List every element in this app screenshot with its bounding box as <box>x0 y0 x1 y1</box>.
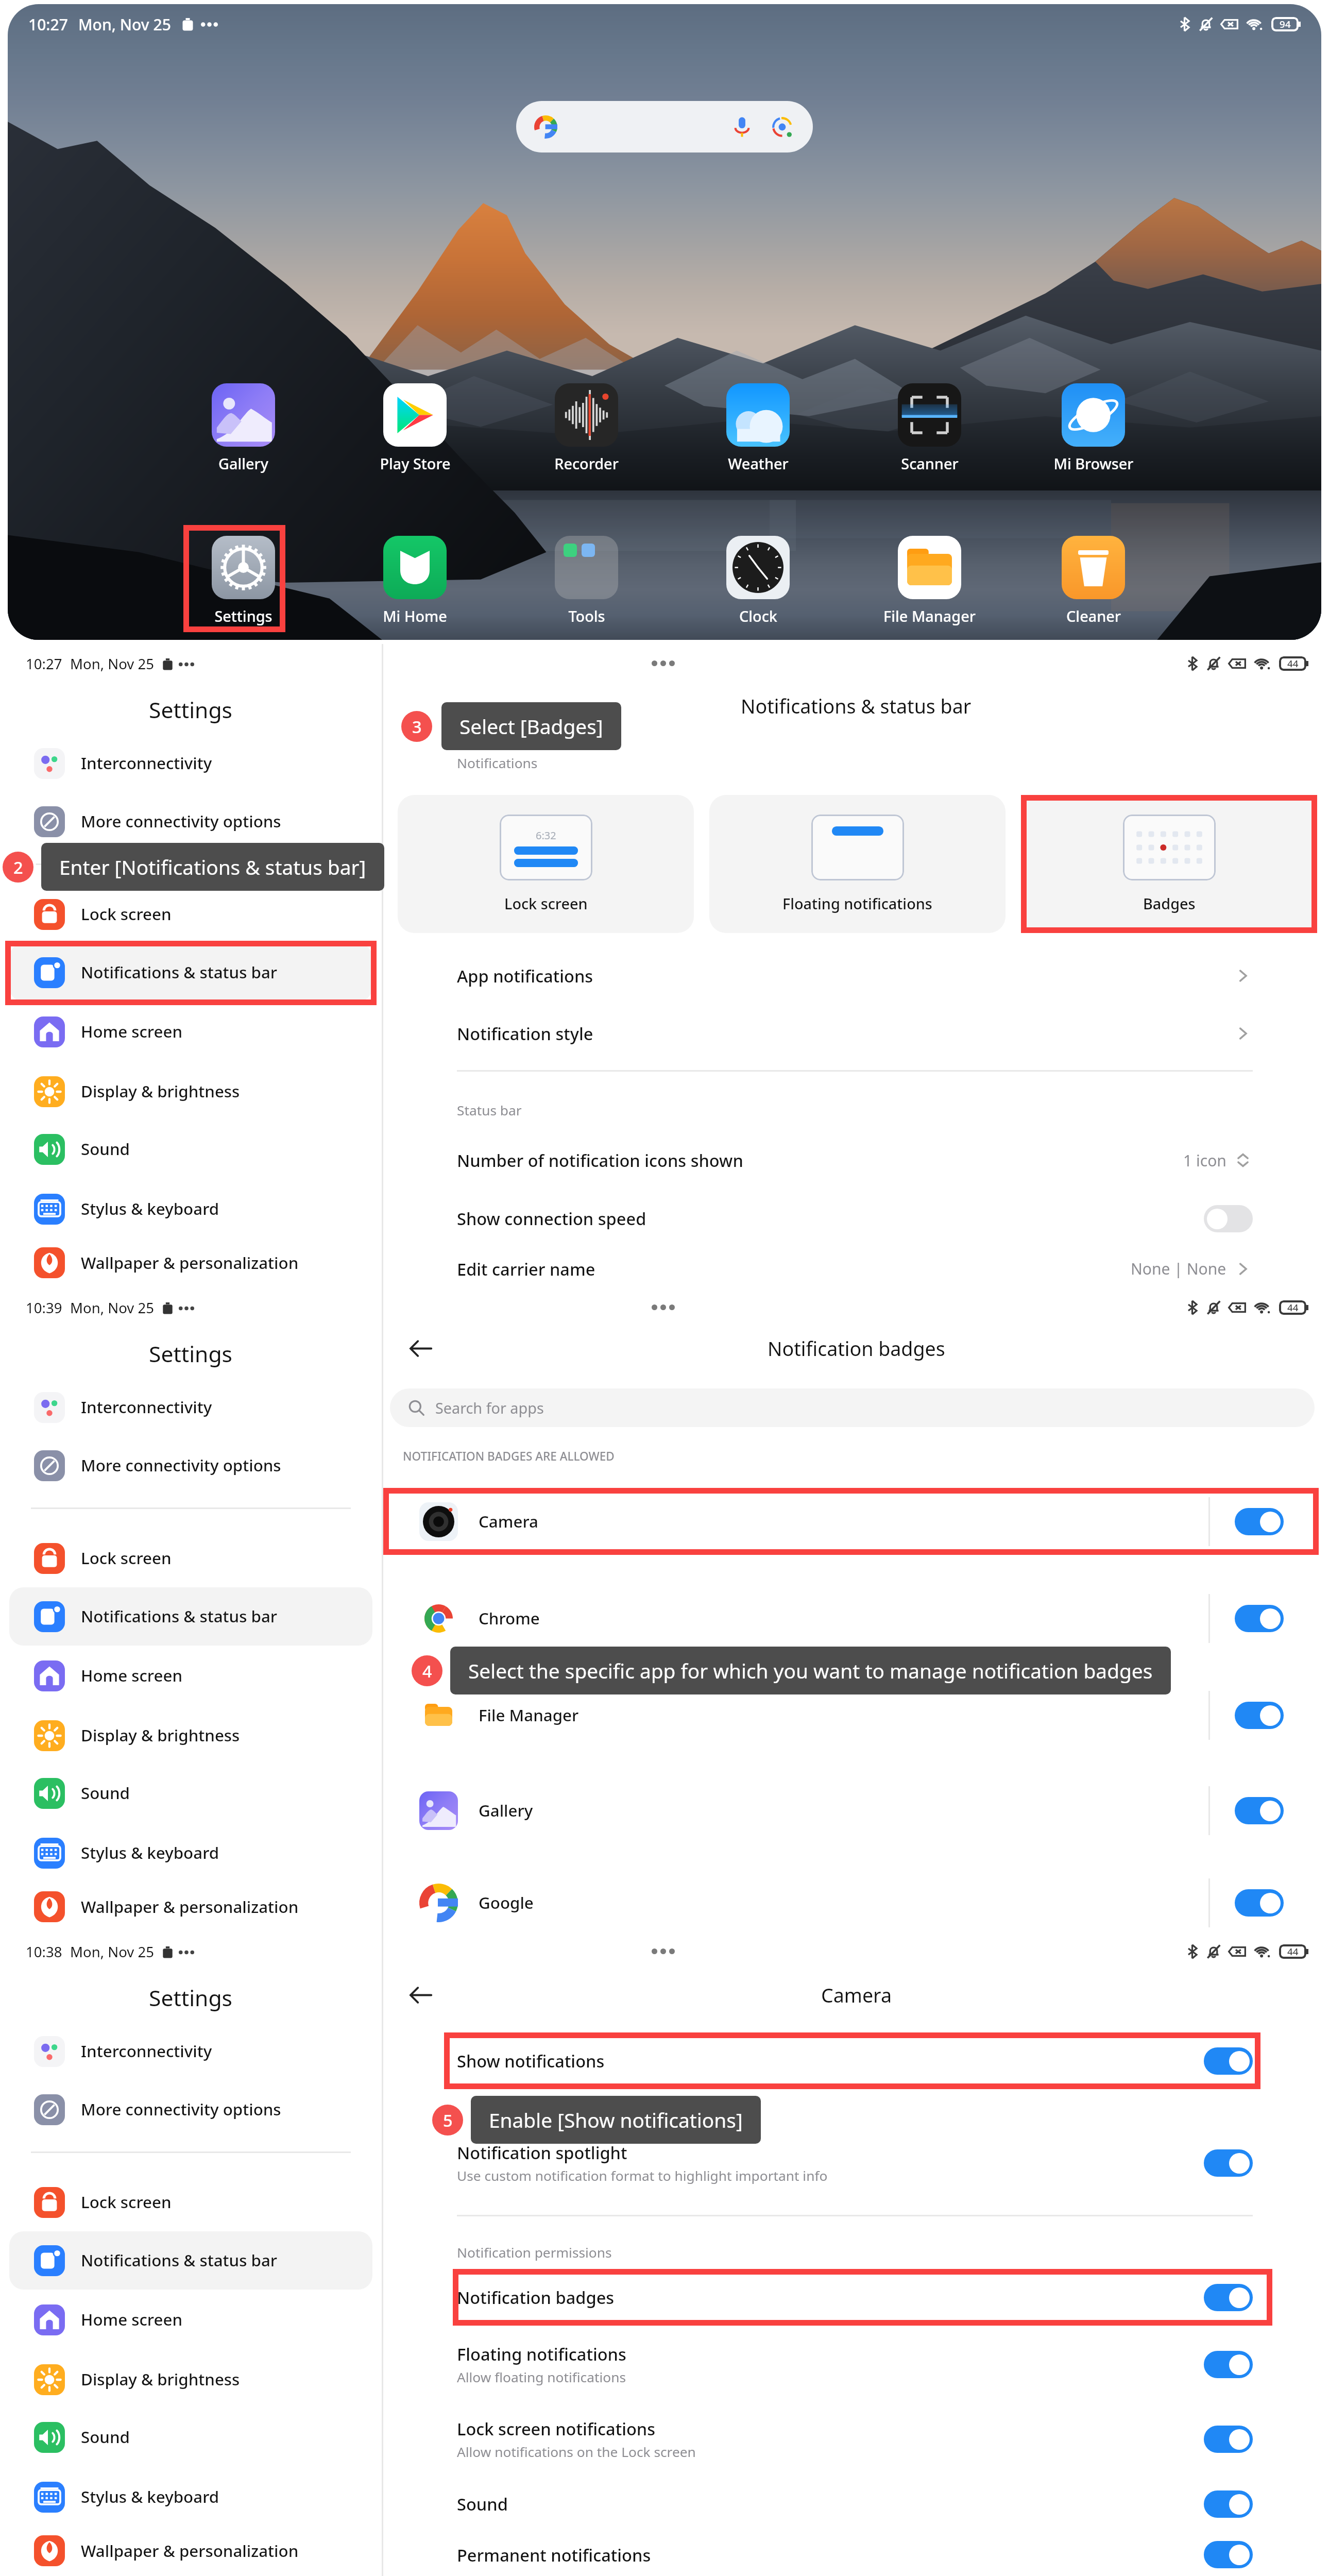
button[interactable]: Floating notifications <box>709 795 1006 933</box>
button[interactable]: Sound <box>9 2408 372 2466</box>
button[interactable]: Lock screen <box>9 1529 372 1587</box>
button[interactable] <box>516 101 813 152</box>
button[interactable]: Camera <box>383 1488 1329 1555</box>
staticText: Lock screen <box>81 2191 172 2213</box>
button[interactable]: Notifications & status bar <box>9 1587 372 1646</box>
button[interactable]: More connectivity options <box>9 1436 372 1495</box>
staticText: Home screen <box>81 1021 183 1043</box>
button[interactable]: Interconnectivity <box>9 2022 372 2080</box>
button[interactable]: Sound <box>9 1120 372 1178</box>
button[interactable] <box>1235 1797 1284 1824</box>
button[interactable]: Wallpaper & personalization <box>9 1882 372 1932</box>
button[interactable] <box>1235 1508 1284 1535</box>
button[interactable]: Display & brightness <box>9 2350 372 2409</box>
button[interactable]: Wallpaper & personalization <box>9 2526 372 2576</box>
staticText: Display & brightness <box>81 1724 240 1747</box>
staticText: Notifications & status bar <box>741 693 972 719</box>
staticText: 3 <box>412 715 422 738</box>
button[interactable] <box>1204 2351 1253 2378</box>
button[interactable] <box>1204 2047 1253 2075</box>
button[interactable]: Mi Home <box>329 536 501 626</box>
button[interactable] <box>1204 2284 1253 2311</box>
button[interactable]: Floating notifications <box>457 2332 1253 2397</box>
button[interactable]: Lock screen <box>9 885 372 943</box>
staticText: Notification spotlight <box>457 2141 627 2164</box>
button[interactable]: More connectivity options <box>9 2080 372 2139</box>
button[interactable]: Home screen <box>9 1003 372 1061</box>
button[interactable]: Wallpaper & personalization <box>9 1238 372 1288</box>
button[interactable] <box>1235 1702 1284 1729</box>
button[interactable]: Google <box>383 1874 1329 1932</box>
staticText: Settings <box>149 1338 233 1368</box>
button[interactable]: Stylus & keyboard <box>9 1180 372 1238</box>
button[interactable]: Display & brightness <box>9 1706 372 1765</box>
button[interactable]: Badges <box>1021 795 1317 933</box>
staticText: 10:27 <box>28 14 68 35</box>
button[interactable]: Weather <box>672 383 844 473</box>
button[interactable] <box>1204 2149 1253 2177</box>
staticText: 44 <box>1287 1301 1299 1314</box>
button[interactable]: Display & brightness <box>9 1062 372 1121</box>
staticText: Play Store <box>380 453 451 473</box>
button[interactable]: Permanent notifications <box>457 2533 1253 2576</box>
staticText: Stylus & keyboard <box>81 1842 219 1864</box>
button[interactable] <box>1204 2490 1253 2518</box>
button[interactable]: Sound <box>457 2476 1253 2532</box>
button[interactable] <box>1235 1605 1284 1632</box>
button[interactable]: 6:32 <box>398 795 694 933</box>
button[interactable]: Notification badges <box>457 2269 1253 2326</box>
staticText: Camera <box>479 1511 538 1533</box>
button[interactable]: Notification spotlight <box>457 2131 1253 2195</box>
button[interactable]: Interconnectivity <box>9 734 372 792</box>
button[interactable]: Notifications & status bar <box>9 2231 372 2290</box>
button[interactable] <box>1235 1889 1284 1917</box>
staticText: Sound <box>81 2426 130 2448</box>
button[interactable]: Play Store <box>329 383 501 473</box>
button[interactable]: Cleaner <box>1015 536 1171 626</box>
button[interactable]: App notifications <box>457 947 1253 1004</box>
staticText: Gallery <box>479 1800 533 1822</box>
button[interactable]: Notifications & status bar <box>9 943 372 1002</box>
staticText: Search for apps <box>435 1398 544 1418</box>
staticText: Home screen <box>81 1665 183 1687</box>
button[interactable]: More connectivity options <box>9 792 372 851</box>
button[interactable]: Tools <box>501 536 672 626</box>
button[interactable]: Stylus & keyboard <box>9 1824 372 1882</box>
staticText: File Manager <box>883 606 976 626</box>
button[interactable]: Show connection speed <box>457 1190 1253 1247</box>
button[interactable]: Recorder <box>501 383 672 473</box>
button[interactable]: Clock <box>672 536 844 626</box>
staticText: Wallpaper & personalization <box>81 1896 299 1918</box>
button[interactable]: File Manager <box>844 536 1015 626</box>
button[interactable]: Mi Browser <box>1015 383 1171 473</box>
button[interactable]: Show notifications <box>457 2032 1253 2089</box>
staticText: Sound <box>81 1138 130 1160</box>
button[interactable] <box>1204 2426 1253 2453</box>
button[interactable]: Chrome <box>383 1585 1329 1652</box>
button[interactable]: Sound <box>9 1764 372 1822</box>
button[interactable]: Home screen <box>9 1647 372 1705</box>
button[interactable] <box>1204 1205 1253 1232</box>
button[interactable]: File Manager <box>383 1682 1329 1749</box>
button[interactable]: Lock screen <box>9 2173 372 2231</box>
button[interactable]: Notification style <box>457 1005 1253 1062</box>
button[interactable]: Home screen <box>9 2291 372 2349</box>
button[interactable]: Scanner <box>844 383 1015 473</box>
button[interactable]: Interconnectivity <box>9 1378 372 1436</box>
button[interactable]: Gallery <box>158 383 329 473</box>
button[interactable]: Stylus & keyboard <box>9 2468 372 2526</box>
button[interactable]: Back <box>404 1332 437 1365</box>
button[interactable]: Edit carrier name <box>457 1249 1253 1288</box>
button[interactable]: Gallery <box>383 1777 1329 1844</box>
staticText: Notifications & status bar <box>81 961 278 984</box>
button[interactable]: Search for apps <box>390 1388 1315 1427</box>
button[interactable] <box>1204 2541 1253 2568</box>
button[interactable]: Settings <box>158 536 329 626</box>
staticText: Google <box>479 1892 534 1914</box>
button[interactable]: Lock screen notifications <box>457 2407 1253 2471</box>
staticText: Notification permissions <box>457 2243 612 2262</box>
staticText: Permanent notifications <box>457 2544 651 2566</box>
staticText: 6:32 <box>536 828 556 842</box>
button[interactable]: Number of notification icons shown <box>457 1132 1253 1189</box>
button[interactable]: Back <box>404 1978 437 2012</box>
